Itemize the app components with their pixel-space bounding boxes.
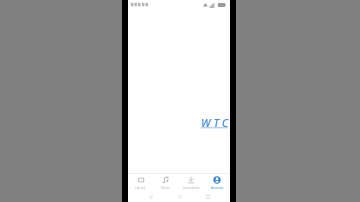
staticText: Library	[135, 186, 146, 190]
button[interactable]: Back	[145, 191, 156, 202]
staticText: Account	[211, 186, 224, 190]
button[interactable]: W T C	[200, 114, 230, 131]
button[interactable]: Library	[128, 174, 153, 191]
button[interactable]: Home	[174, 191, 185, 202]
staticText: Downloads	[183, 186, 200, 190]
button[interactable]: Music	[153, 174, 178, 191]
button[interactable]: Account	[204, 174, 230, 191]
button[interactable]: Downloads	[178, 174, 204, 191]
button[interactable]: Recents	[202, 191, 213, 202]
staticText: W T C	[201, 115, 229, 130]
staticText: Music	[161, 186, 170, 190]
